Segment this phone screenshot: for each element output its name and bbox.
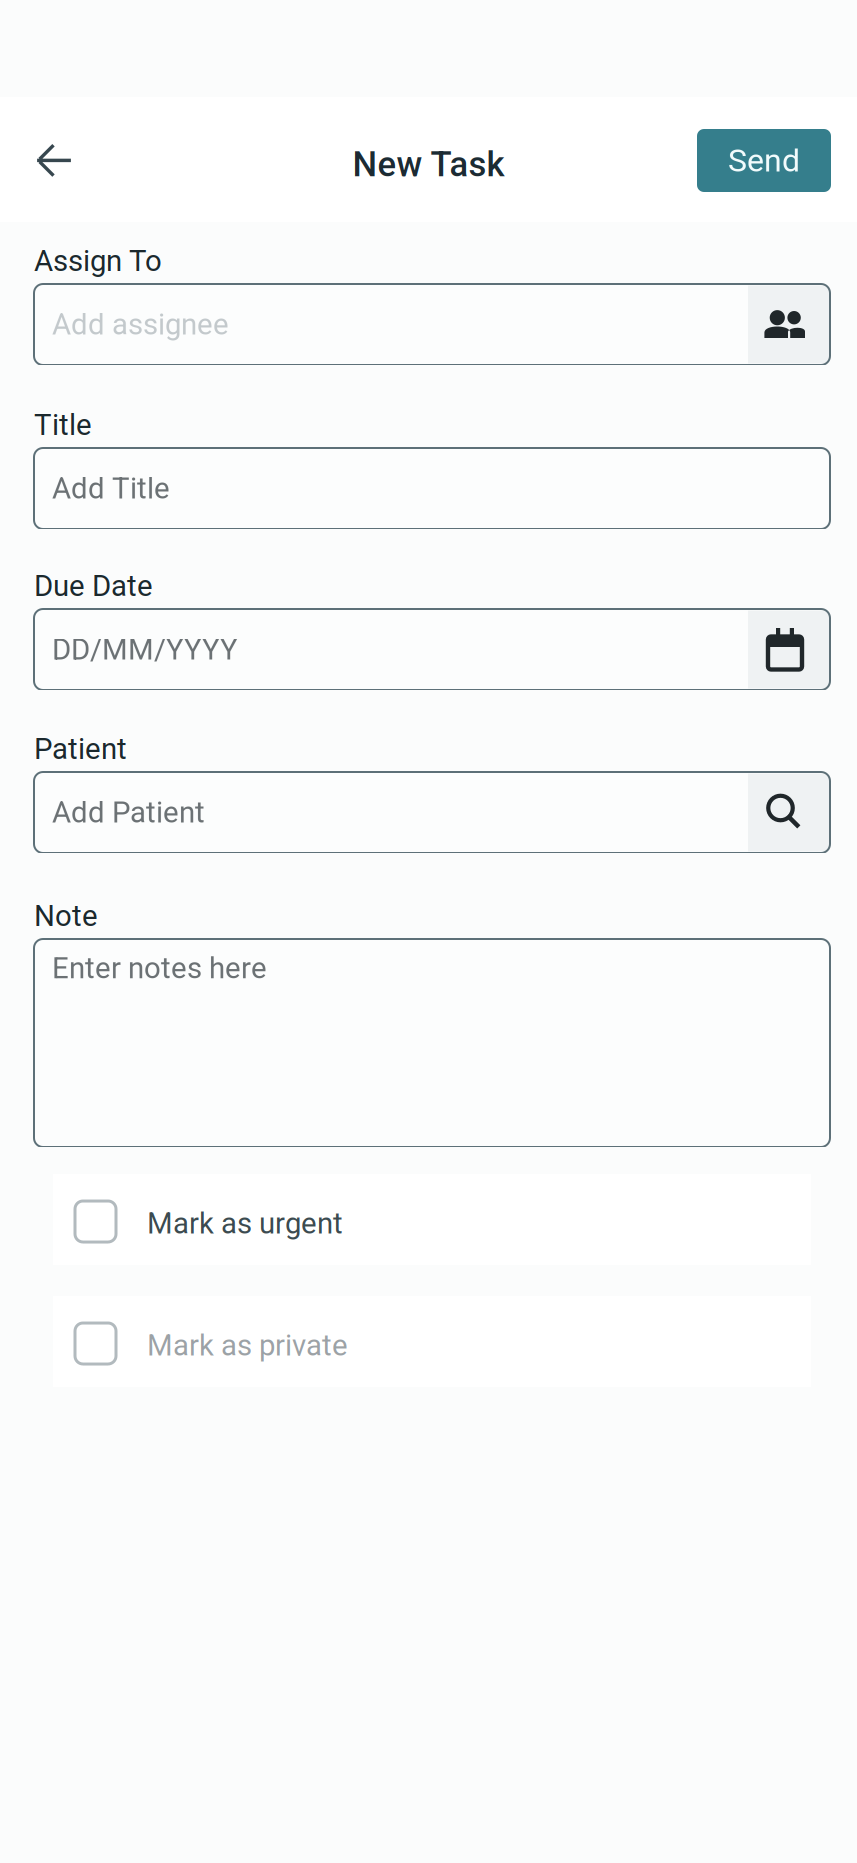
button[interactable]: Back (19, 125, 89, 195)
button[interactable]: Search patient (748, 773, 830, 851)
staticText: Assign To (34, 244, 162, 278)
button[interactable]: Send (697, 129, 831, 192)
staticText: New Task (352, 144, 504, 185)
button[interactable]: Pick date (748, 610, 830, 688)
staticText: Patient (34, 732, 127, 766)
staticText: Enter notes here (52, 951, 267, 985)
staticText: DD/MM/YYYY (52, 632, 238, 667)
staticText: Add assignee (52, 307, 229, 342)
staticText: Due Date (34, 569, 153, 603)
button[interactable]: Mark as urgent (53, 1174, 811, 1265)
button[interactable]: Mark as private (53, 1296, 811, 1387)
button[interactable]: Choose assignee (748, 285, 830, 363)
staticText: Add Title (52, 471, 170, 506)
staticText: Title (34, 408, 92, 442)
staticText: Mark as urgent (147, 1206, 343, 1241)
staticText: Send (728, 142, 800, 179)
staticText: Note (34, 899, 98, 933)
staticText: Mark as private (147, 1328, 348, 1363)
staticText: Add Patient (52, 795, 205, 830)
